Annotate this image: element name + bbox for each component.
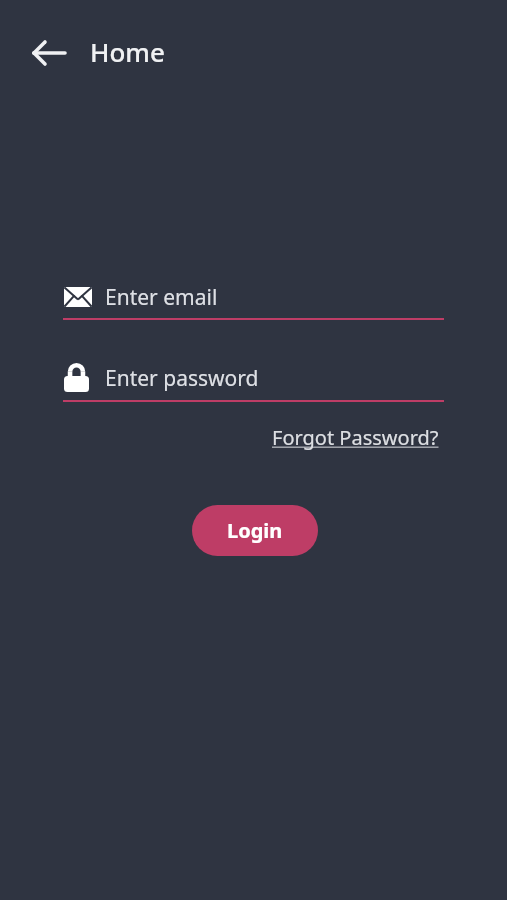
staticText: Enter password — [105, 364, 259, 393]
button[interactable]: Login — [192, 505, 318, 556]
button[interactable] — [22, 31, 76, 75]
staticText: Enter email — [105, 283, 218, 312]
staticText: Forgot Password? — [272, 424, 439, 451]
button[interactable]: Enter password — [63, 360, 444, 404]
staticText: Login — [227, 517, 283, 544]
button[interactable]: Forgot Password? — [272, 424, 439, 451]
button[interactable]: Enter email — [63, 278, 444, 322]
staticText: Home — [90, 34, 165, 69]
